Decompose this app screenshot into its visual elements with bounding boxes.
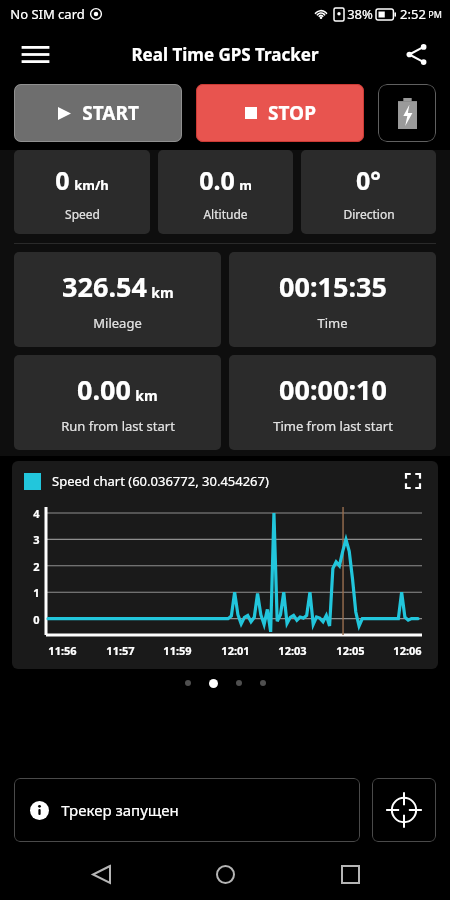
button[interactable]: 00:15:35	[229, 252, 436, 347]
staticText: 0	[33, 612, 40, 627]
staticText: Time from last start	[273, 417, 393, 435]
staticText: START	[82, 100, 139, 126]
button[interactable]: 0	[14, 150, 150, 234]
staticText: 0.00	[77, 371, 131, 408]
staticText: Speed chart (60.036772, 30.454267)	[52, 472, 269, 490]
button[interactable]: My location	[372, 778, 436, 842]
staticText: 12:03	[278, 643, 307, 658]
staticText: km/h	[74, 176, 109, 194]
staticText: 326.54	[62, 268, 147, 305]
staticText: 3	[33, 532, 40, 547]
button[interactable]: Expand chart	[400, 468, 426, 494]
staticText: Time	[317, 314, 348, 332]
button[interactable]: Menu	[12, 31, 58, 77]
staticText: 0	[55, 163, 70, 197]
staticText: 12:05	[336, 643, 365, 658]
staticText: Altitude	[203, 206, 248, 222]
button[interactable]: STOP	[196, 84, 364, 142]
staticText: Трекер запущен	[61, 800, 179, 820]
button[interactable]: Battery saver	[378, 84, 436, 142]
staticText: 12:06	[393, 643, 422, 658]
staticText: 11:59	[163, 643, 192, 658]
staticText: 00:15:35	[279, 268, 387, 305]
staticText: 0°	[356, 163, 381, 197]
staticText: 0.0	[199, 163, 235, 197]
staticText: Real Time GPS Tracker	[131, 43, 319, 66]
staticText: PM	[428, 8, 442, 20]
staticText: 11:57	[106, 643, 135, 658]
button[interactable]: 0.00	[14, 355, 221, 450]
staticText: 38%	[347, 5, 373, 23]
button[interactable]: 00:00:10	[229, 355, 436, 450]
staticText: 12:01	[221, 643, 250, 658]
staticText: Speed	[65, 206, 100, 222]
button[interactable]: Recents	[326, 850, 374, 898]
staticText: Mileage	[93, 314, 142, 332]
staticText: STOP	[268, 100, 316, 126]
staticText: m	[239, 176, 252, 194]
button[interactable]: 0.0	[158, 150, 293, 234]
staticText: km	[151, 283, 174, 302]
staticText: 4	[33, 506, 40, 521]
staticText: 00:00:10	[279, 371, 387, 408]
staticText: Run from last start	[61, 417, 175, 435]
button[interactable]: 0°	[301, 150, 436, 234]
staticText: 2	[33, 559, 40, 574]
button[interactable]: START	[14, 84, 182, 142]
button[interactable]: 326.54	[14, 252, 221, 347]
button[interactable]: Back	[77, 850, 125, 898]
staticText: 1	[33, 585, 40, 600]
button[interactable]: Home	[201, 850, 249, 898]
staticText: No SIM card	[10, 5, 85, 23]
staticText: 11:56	[48, 643, 77, 658]
button[interactable]: Share	[394, 32, 438, 76]
staticText: km	[135, 386, 158, 405]
button[interactable]: Трекер запущен	[14, 778, 360, 842]
staticText: 2:52	[400, 5, 426, 23]
staticText: Direction	[343, 206, 395, 222]
